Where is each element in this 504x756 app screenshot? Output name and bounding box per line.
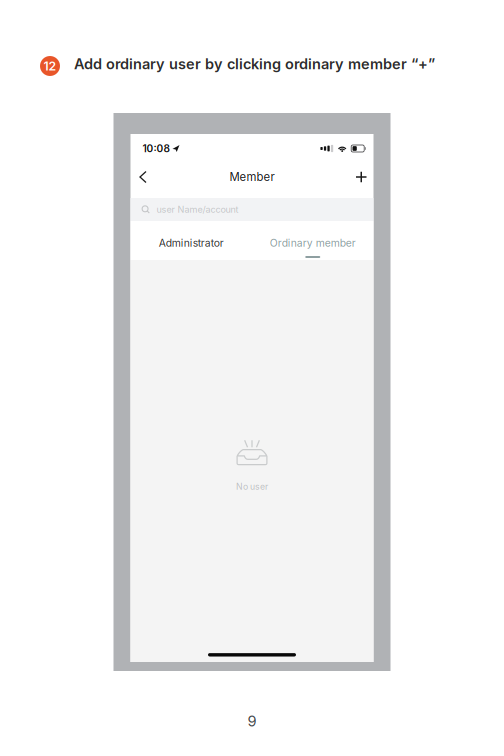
button[interactable]: Ordinary member — [252, 221, 373, 260]
staticText: 9 — [247, 712, 256, 730]
staticText: No user — [236, 481, 268, 492]
staticText: 10:08 — [142, 142, 169, 155]
staticText: Ordinary member — [270, 237, 356, 249]
button[interactable]: user Name/account — [130, 198, 373, 221]
button[interactable]: Add member — [352, 165, 370, 189]
button[interactable]: Administrator — [130, 221, 252, 260]
staticText: Add ordinary user by clicking ordinary m… — [74, 55, 435, 73]
staticText: 12 — [43, 59, 56, 73]
button[interactable]: Back — [134, 164, 152, 189]
staticText: Member — [229, 170, 274, 184]
staticText: user Name/account — [156, 204, 238, 215]
staticText: Administrator — [159, 237, 224, 249]
